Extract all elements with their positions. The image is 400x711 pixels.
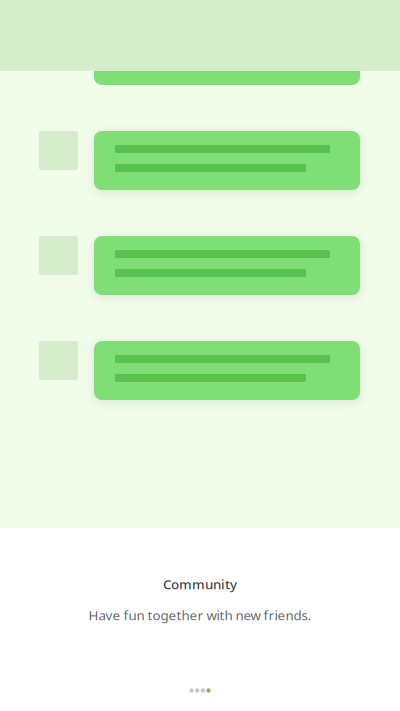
button[interactable]: Page 1 — [189, 688, 193, 693]
button[interactable]: Page 4, current page — [206, 688, 211, 693]
button[interactable]: Page 3 — [201, 688, 205, 693]
button[interactable]: Page 2 — [195, 688, 199, 693]
staticText: Have fun together with new friends. — [88, 606, 311, 624]
staticText: Community — [163, 575, 237, 593]
